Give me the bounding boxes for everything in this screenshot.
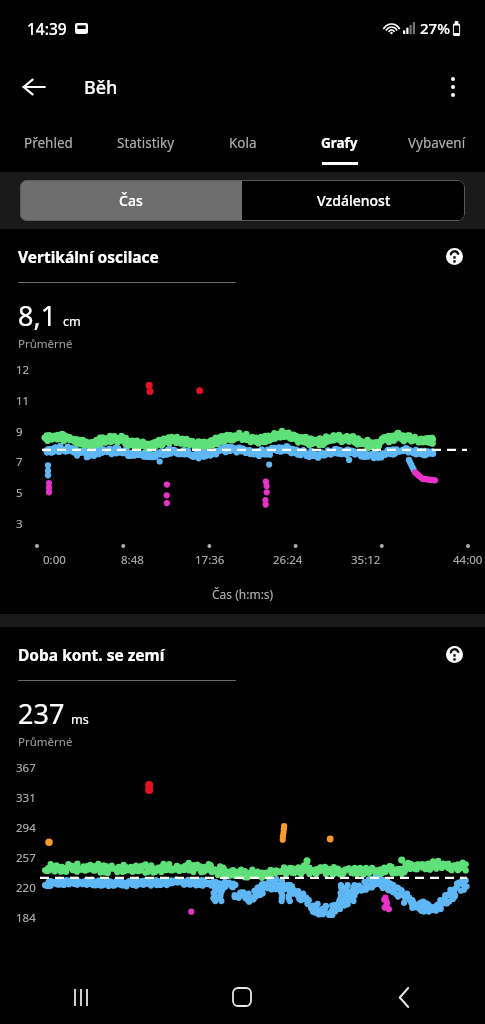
staticText: Doba kont. se zemí	[18, 644, 165, 665]
staticText: ms	[71, 711, 89, 728]
staticText: 9	[16, 424, 23, 440]
staticText: 331	[16, 790, 36, 806]
staticText: Přehled	[24, 134, 73, 152]
button[interactable]: Vzdálenost	[242, 180, 465, 221]
button[interactable]: Vybavení	[388, 118, 485, 172]
staticText: 12	[16, 362, 30, 378]
button[interactable]: Help	[441, 641, 467, 667]
staticText: 237	[18, 695, 65, 732]
staticText: 0:00	[43, 552, 66, 568]
button[interactable]: Statistiky	[97, 118, 194, 172]
staticText: 35:12	[351, 552, 381, 568]
button[interactable]: Home	[161, 970, 323, 1024]
staticText: 3	[16, 516, 23, 532]
staticText: 257	[16, 850, 36, 866]
button[interactable]: Grafy	[291, 118, 388, 172]
button[interactable]: Čas	[20, 180, 242, 221]
staticText: Čas (h:m:s)	[212, 586, 274, 602]
staticText: 367	[16, 760, 36, 776]
staticText: 14:39	[27, 18, 67, 39]
staticText: cm	[63, 313, 81, 330]
button[interactable]: Help	[441, 243, 467, 269]
staticText: 17:36	[195, 552, 225, 568]
button[interactable]: Přehled	[0, 118, 97, 172]
staticText: Vertikální oscilace	[18, 246, 159, 267]
staticText: 7	[16, 454, 23, 470]
staticText: 11	[16, 393, 30, 409]
staticText: Průměrné	[18, 336, 73, 352]
staticText: 294	[16, 820, 36, 836]
staticText: 44:00	[453, 552, 483, 568]
button[interactable]: Recent apps	[0, 970, 161, 1024]
staticText: Vybavení	[408, 134, 466, 152]
staticText: 184	[16, 910, 36, 926]
button[interactable]: Back	[323, 970, 485, 1024]
staticText: Běh	[84, 75, 118, 100]
staticText: 8,1	[18, 297, 57, 334]
staticText: Kola	[229, 134, 257, 152]
staticText: 5	[16, 485, 23, 501]
staticText: Grafy	[321, 134, 358, 152]
staticText: Průměrné	[18, 734, 73, 750]
staticText: 8:48	[121, 552, 144, 568]
staticText: 27%	[420, 18, 450, 38]
button[interactable]: Back	[10, 63, 58, 111]
button[interactable]: More options	[429, 63, 477, 111]
staticText: 220	[16, 880, 36, 896]
button[interactable]: Kola	[194, 118, 291, 172]
staticText: Čas	[119, 191, 143, 210]
staticText: Vzdálenost	[317, 191, 391, 210]
staticText: 26:24	[273, 552, 303, 568]
staticText: Statistiky	[117, 134, 175, 152]
